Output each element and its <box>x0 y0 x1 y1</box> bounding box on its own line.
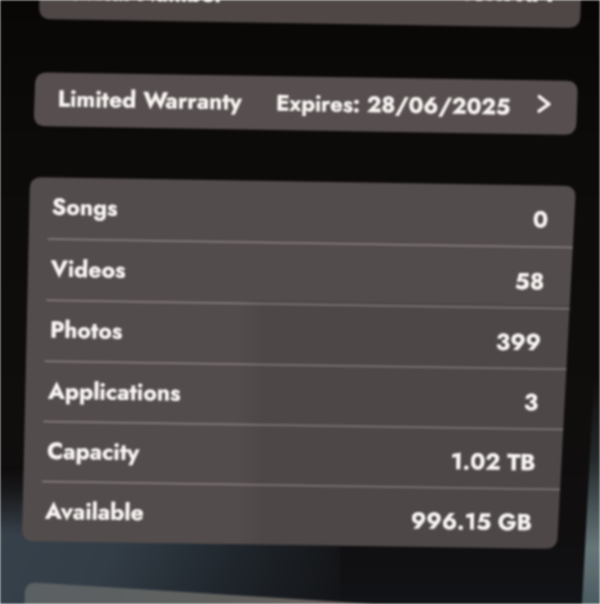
button[interactable]: Open limited warranty details <box>533 93 555 115</box>
button[interactable] <box>43 296 563 365</box>
staticText: Capacity <box>47 434 140 468</box>
staticText: 3 <box>524 385 539 418</box>
button[interactable] <box>42 357 562 426</box>
staticText: 399 <box>496 325 542 358</box>
button[interactable] <box>40 477 560 546</box>
staticText: Available <box>45 494 144 528</box>
staticText: Expires: 28/06/2025 <box>276 87 511 122</box>
staticText: 0 <box>533 202 549 235</box>
button[interactable] <box>46 173 566 242</box>
staticText: Videos <box>51 252 126 286</box>
staticText: Applications <box>48 374 181 409</box>
staticText: R58TA13K9XM <box>389 0 553 10</box>
staticText: 996.15 GB <box>411 503 533 538</box>
staticText: Photos <box>50 313 123 347</box>
button[interactable] <box>45 235 565 304</box>
staticText: Limited Warranty <box>58 81 242 117</box>
staticText: 58 <box>515 264 545 297</box>
staticText: 1.02 TB <box>451 444 536 478</box>
staticText: Serial Number <box>68 0 225 10</box>
button[interactable] <box>41 417 561 486</box>
staticText: Songs <box>52 189 118 224</box>
